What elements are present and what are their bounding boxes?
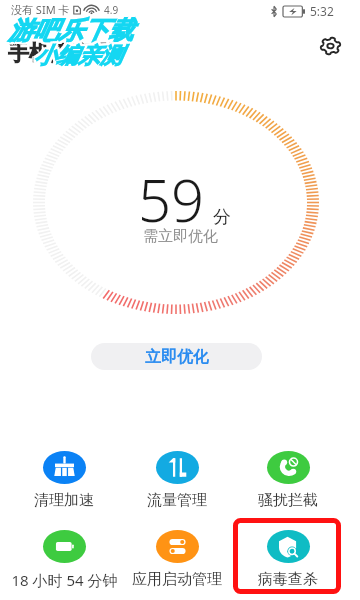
- button[interactable]: 立即优化: [91, 343, 262, 370]
- button[interactable]: 应用启动管理: [121, 530, 233, 588]
- staticText: 骚扰拦截: [258, 491, 318, 509]
- button[interactable]: 18 小时 54 分钟: [8, 530, 120, 588]
- staticText: 分: [213, 206, 231, 229]
- button[interactable]: 清理加速: [8, 451, 120, 509]
- staticText: 小编亲测: [34, 40, 122, 68]
- staticText: 18 小时 54 分钟: [11, 570, 118, 588]
- staticText: 59: [138, 160, 205, 239]
- button[interactable]: 骚扰拦截: [232, 451, 344, 509]
- staticText: 手机篇亲测: [8, 39, 113, 65]
- staticText: 立即优化: [145, 347, 209, 367]
- staticText: 小编亲测: [32, 44, 120, 72]
- button[interactable]: Settings: [312, 28, 348, 64]
- staticText: 游吧乐下载: [10, 13, 135, 44]
- button[interactable]: 流量管理: [121, 451, 233, 509]
- staticText: 游吧乐下载: [6, 17, 131, 48]
- staticText: 清理加速: [34, 491, 94, 509]
- staticText: 病毒查杀: [258, 570, 318, 588]
- staticText: 流量管理: [147, 491, 207, 509]
- staticText: 没有 SIM 卡: [11, 2, 70, 17]
- staticText: 手机篇亲测: [7, 39, 112, 65]
- staticText: 游吧乐下载: [6, 15, 131, 46]
- staticText: 小编亲测: [34, 42, 122, 70]
- staticText: 游吧乐下载: [6, 13, 131, 44]
- staticText: 需立即优化: [143, 227, 218, 246]
- staticText: 手机篇亲测: [7, 40, 112, 66]
- staticText: 游吧乐下载: [8, 13, 133, 44]
- staticText: 手机篇亲测: [7, 41, 112, 67]
- staticText: 小编亲测: [36, 44, 124, 72]
- staticText: 小编亲测: [34, 44, 122, 72]
- staticText: 手机篇亲测: [8, 40, 113, 66]
- staticText: 4.9: [104, 3, 119, 17]
- staticText: 小编亲测: [32, 42, 120, 70]
- staticText: 小编亲测: [36, 42, 124, 70]
- staticText: 应用启动管理: [132, 570, 222, 588]
- staticText: 手机篇亲测: [9, 41, 114, 67]
- staticText: 手机篇亲测: [9, 40, 114, 66]
- staticText: 游吧乐下载: [10, 17, 135, 48]
- button[interactable]: 病毒查杀: [232, 530, 344, 588]
- staticText: 小编亲测: [36, 40, 124, 68]
- staticText: 游吧乐下载: [8, 17, 133, 48]
- staticText: 游吧乐下载: [10, 15, 135, 46]
- staticText: 5:32: [310, 3, 334, 19]
- staticText: 小编亲测: [32, 40, 120, 68]
- staticText: 手机篇亲测: [9, 39, 114, 65]
- staticText: 手机篇亲测: [8, 41, 113, 67]
- staticText: 游吧乐下载: [8, 15, 133, 46]
